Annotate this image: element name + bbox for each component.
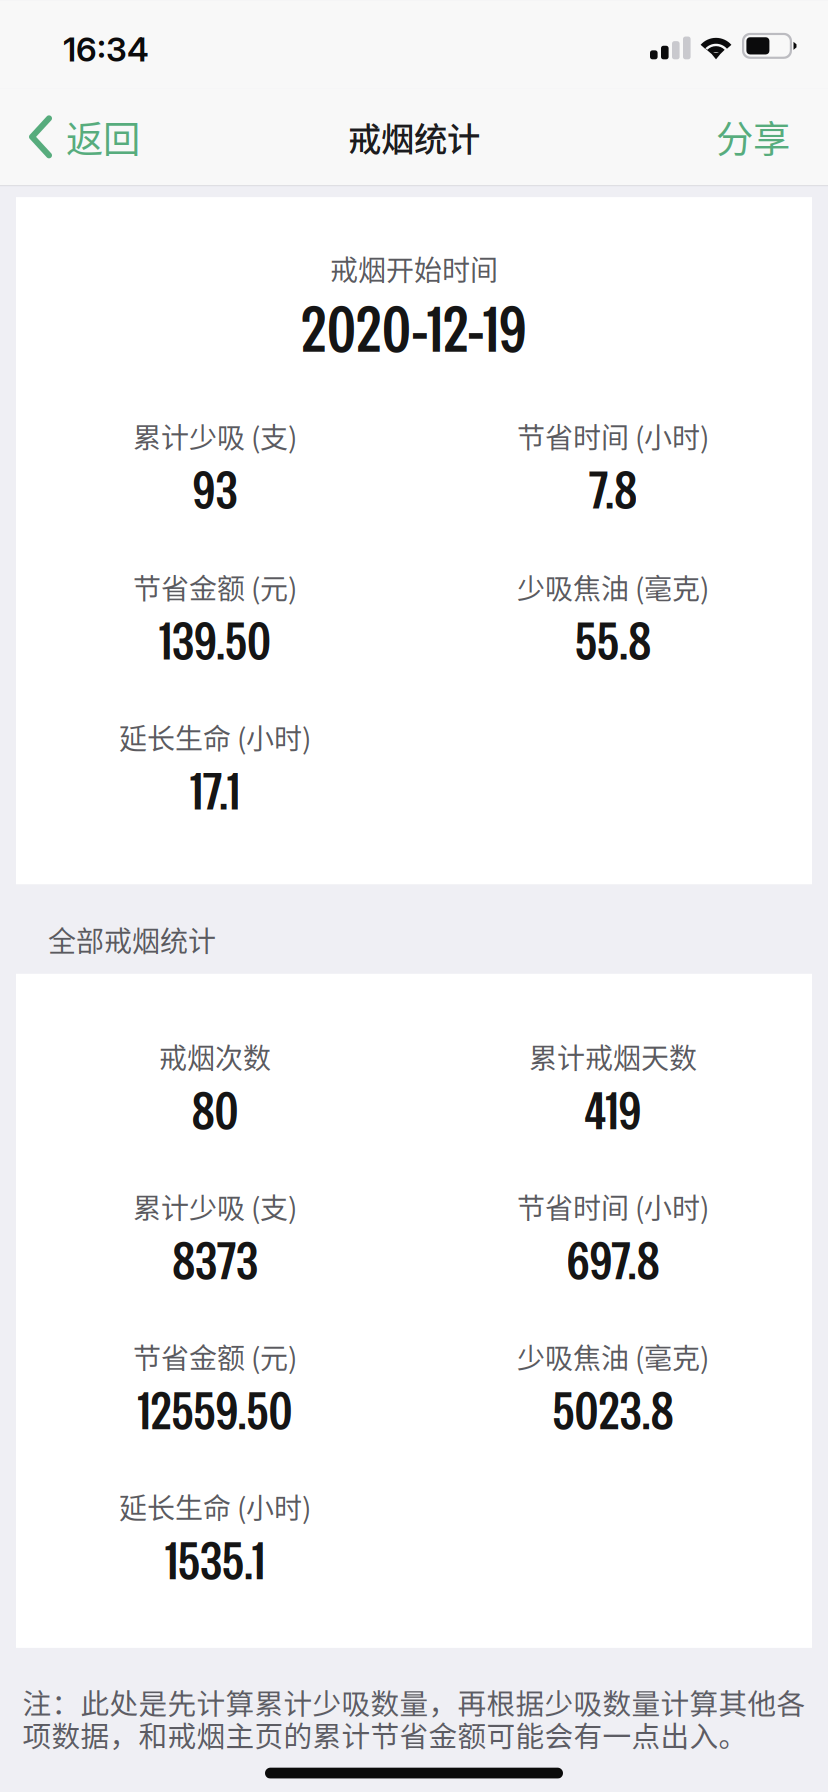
staticText: 697.8 (566, 1227, 659, 1294)
staticText: 少吸焦油 (毫克) (517, 567, 709, 607)
staticText: 80 (191, 1077, 238, 1144)
staticText: 戒烟开始时间 (330, 248, 498, 289)
staticText: 55.8 (575, 607, 651, 675)
staticText: 分享 (716, 110, 790, 164)
staticText: 全部戒烟统计 (48, 919, 216, 960)
staticText: 戒烟统计 (348, 113, 480, 161)
staticText: 节省时间 (小时) (517, 1186, 709, 1227)
staticText: 延长生命 (小时) (119, 1486, 311, 1527)
staticText: 2020-12-19 (301, 289, 527, 370)
staticText: 93 (192, 456, 237, 524)
staticText: 注：此处是先计算累计少吸数量，再根据少吸数量计算其他各项数据，和戒烟主页的累计节… (22, 1686, 805, 1751)
staticText: 12559.50 (137, 1377, 292, 1444)
staticText: 累计少吸 (支) (133, 1186, 297, 1227)
staticText: 累计戒烟天数 (529, 1036, 697, 1077)
staticText: 累计少吸 (支) (133, 416, 297, 456)
staticText: 延长生命 (小时) (119, 717, 311, 757)
button[interactable]: 返回 (0, 88, 160, 185)
staticText: 17.1 (190, 757, 240, 825)
staticText: 节省金额 (元) (133, 567, 297, 607)
staticText: 1535.1 (165, 1527, 265, 1594)
staticText: 8373 (172, 1227, 258, 1294)
staticText: 返回 (66, 110, 140, 164)
button[interactable]: 分享 (696, 88, 828, 185)
staticText: 5023.8 (552, 1377, 673, 1444)
staticText: 16:34 (63, 29, 149, 69)
staticText: 419 (584, 1077, 641, 1144)
staticText: 节省时间 (小时) (517, 416, 709, 456)
staticText: 少吸焦油 (毫克) (517, 1336, 709, 1377)
staticText: 戒烟次数 (159, 1036, 271, 1077)
staticText: 节省金额 (元) (133, 1336, 297, 1377)
staticText: 139.50 (159, 607, 271, 675)
staticText: 7.8 (589, 456, 637, 524)
